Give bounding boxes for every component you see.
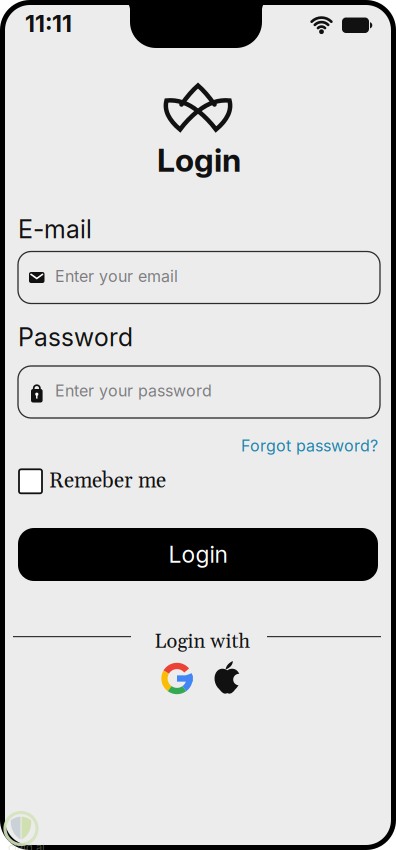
staticText: claid.ai [8,841,45,850]
button[interactable]: Forgot password? [241,436,378,455]
button[interactable]: Remeber me [19,468,166,495]
button[interactable] [212,659,242,695]
staticText: Login [157,141,241,179]
staticText: Login [168,541,227,568]
staticText: Forgot password? [241,436,378,455]
button[interactable]: Enter your password [18,366,380,418]
staticText: E-mail [18,214,92,244]
staticText: Remeber me [49,468,166,495]
staticText: Enter your password [55,381,212,400]
staticText: Login with [154,629,250,655]
button[interactable] [161,662,193,695]
button[interactable]: Login [18,528,378,581]
staticText: Password [18,322,133,352]
staticText: Enter your email [55,266,178,286]
button[interactable]: Enter your email [18,251,380,303]
staticText: 11:11 [25,9,72,38]
